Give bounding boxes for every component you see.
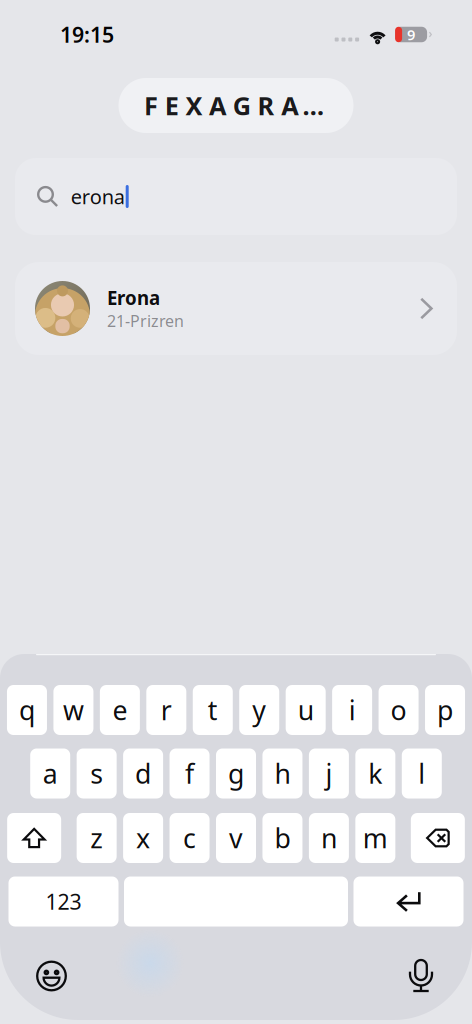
button[interactable]: u	[286, 685, 326, 735]
staticText: x	[136, 820, 150, 856]
button[interactable]: d	[123, 748, 163, 798]
button[interactable]: s	[77, 748, 117, 798]
button[interactable]: z	[77, 813, 117, 863]
button[interactable]: a	[30, 748, 70, 798]
staticText: e	[112, 692, 127, 728]
staticText: w	[63, 692, 84, 728]
staticText: 123	[45, 887, 81, 916]
staticText: s	[90, 756, 103, 791]
staticText: 9	[407, 25, 415, 44]
staticText: v	[229, 820, 243, 856]
button[interactable]: b	[262, 813, 302, 863]
staticText: p	[437, 692, 453, 728]
button[interactable]: y	[239, 685, 279, 735]
staticText: l	[418, 756, 425, 791]
staticText: f	[185, 756, 194, 791]
button[interactable]: Return	[353, 876, 463, 926]
staticText: d	[135, 756, 151, 791]
button[interactable]: t	[193, 685, 233, 735]
staticText: y	[252, 692, 266, 728]
button[interactable]: 123	[8, 876, 118, 926]
staticText: j	[325, 756, 332, 791]
staticText: t	[208, 692, 218, 728]
staticText: q	[19, 692, 35, 728]
staticText: c	[183, 820, 196, 856]
button[interactable]: w	[53, 685, 93, 735]
staticText: i	[349, 692, 356, 728]
staticText: n	[321, 820, 337, 856]
button[interactable]: c	[170, 813, 210, 863]
staticText: a	[43, 756, 58, 791]
button[interactable]: Erona	[15, 262, 457, 355]
button[interactable]: o	[379, 685, 419, 735]
staticText: o	[391, 692, 407, 728]
staticText: r	[161, 692, 172, 728]
button[interactable]: g	[216, 748, 256, 798]
button[interactable]: Delete	[411, 813, 465, 863]
button[interactable]: h	[262, 748, 302, 798]
button[interactable]: i	[332, 685, 372, 735]
staticText: 19:15	[60, 20, 114, 49]
button[interactable]: p	[425, 685, 465, 735]
button[interactable]: k	[355, 748, 395, 798]
button[interactable]: e	[100, 685, 140, 735]
button[interactable]: Shift	[7, 813, 61, 863]
button[interactable]: j	[309, 748, 349, 798]
staticText: g	[228, 756, 244, 791]
button[interactable]: Dictation	[410, 959, 432, 992]
staticText: b	[274, 820, 290, 856]
button[interactable]: l	[402, 748, 442, 798]
button[interactable]: Emoji	[36, 960, 67, 991]
button[interactable]: v	[216, 813, 256, 863]
button[interactable]: m	[355, 813, 395, 863]
staticText: FEXAGRAM	[144, 89, 330, 122]
staticText: Erona	[107, 285, 160, 310]
staticText: k	[368, 756, 382, 791]
staticText: m	[363, 820, 388, 856]
button[interactable]: n	[309, 813, 349, 863]
staticText: h	[274, 756, 290, 791]
staticText: z	[90, 820, 103, 856]
button[interactable]: x	[123, 813, 163, 863]
button[interactable]: q	[7, 685, 47, 735]
button[interactable]: f	[170, 748, 210, 798]
staticText: erona	[71, 183, 125, 210]
staticText: 21-Prizren	[107, 310, 184, 331]
staticText: u	[298, 692, 314, 728]
button[interactable]: r	[146, 685, 186, 735]
button[interactable]: Space	[124, 876, 348, 926]
